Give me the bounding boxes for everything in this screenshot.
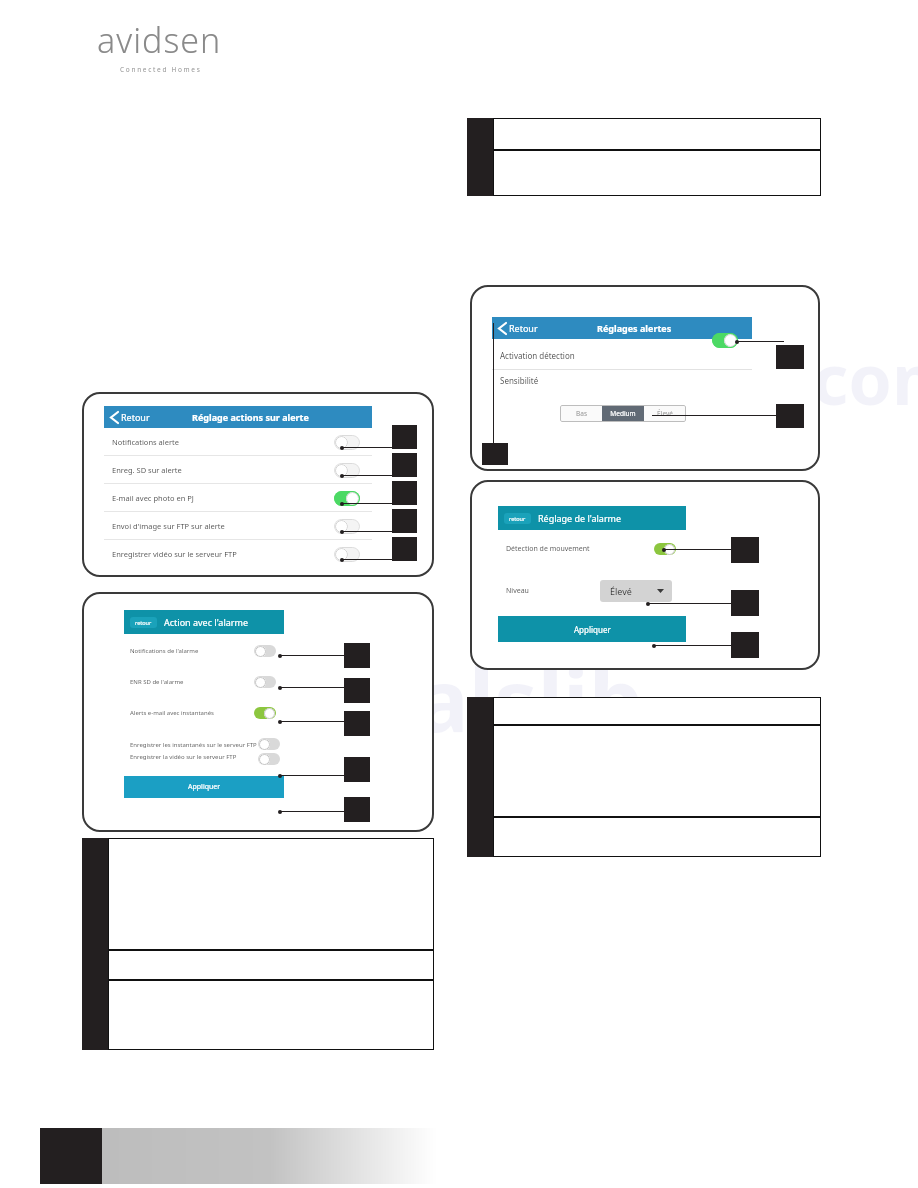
- staticText: Élevé: [610, 585, 632, 597]
- button[interactable]: Alerts e-mail avec instantanés: [124, 700, 284, 726]
- button[interactable]: Medium: [602, 405, 644, 422]
- button[interactable]: retour: [509, 515, 526, 522]
- button[interactable]: Enregistrer vidéo sur le serveur FTP: [104, 540, 372, 568]
- button[interactable]: Élevé: [600, 580, 672, 602]
- button[interactable]: [654, 543, 676, 555]
- staticText: Détection de mouvement: [506, 544, 590, 554]
- button[interactable]: E-mail avec photo en PJ: [104, 484, 372, 512]
- button[interactable]: [712, 333, 738, 348]
- staticText: Bas: [576, 409, 587, 418]
- button[interactable]: retour: [135, 619, 152, 626]
- button[interactable]: [334, 547, 360, 562]
- staticText: Appliquer: [574, 624, 611, 635]
- staticText: retour: [135, 619, 152, 626]
- button[interactable]: [254, 645, 276, 657]
- button[interactable]: Bas: [560, 405, 602, 422]
- staticText: manualslib: [170, 640, 644, 757]
- button[interactable]: Retour: [492, 317, 752, 339]
- staticText: Niveau: [506, 586, 529, 596]
- button[interactable]: Retour: [104, 406, 372, 428]
- button[interactable]: ENR SD de l'alarme: [124, 669, 284, 695]
- button[interactable]: Envoi d'image sur FTP sur alerte: [104, 512, 372, 540]
- button[interactable]: [258, 738, 280, 750]
- staticText: Medium: [610, 409, 636, 418]
- staticText: Notifications alerte: [112, 437, 179, 447]
- staticText: Activation détection: [500, 350, 575, 361]
- button[interactable]: [334, 435, 360, 450]
- staticText: Enregistrer les instantanés sur le serve…: [130, 741, 257, 749]
- staticText: Appliquer: [188, 782, 221, 792]
- staticText: E-mail avec photo en PJ: [112, 493, 194, 503]
- button[interactable]: Appliquer: [124, 776, 284, 798]
- button[interactable]: [334, 491, 360, 506]
- staticText: C o n n e c t e d H o m e s: [120, 65, 200, 74]
- staticText: Réglages alertes: [597, 322, 672, 334]
- staticText: Retour: [121, 411, 150, 423]
- staticText: ENR SD de l'alarme: [130, 678, 184, 686]
- staticText: Sensibilité: [500, 375, 539, 386]
- staticText: Notifications de l'alarme: [130, 647, 199, 655]
- staticText: Enreg. SD sur alerte: [112, 465, 182, 475]
- staticText: retour: [509, 515, 526, 522]
- staticText: archive . com: [500, 330, 918, 425]
- staticText: Réglage de l'alarme: [538, 512, 622, 524]
- button[interactable]: Enreg. SD sur alerte: [104, 456, 372, 484]
- button[interactable]: Notifications alerte: [104, 428, 372, 456]
- staticText: Enregistrer la vidéo sur le serveur FTP: [130, 753, 237, 761]
- button[interactable]: [258, 753, 280, 765]
- staticText: Alerts e-mail avec instantanés: [130, 709, 214, 717]
- staticText: Retour: [509, 322, 538, 334]
- button[interactable]: Appliquer: [498, 616, 686, 642]
- staticText: Envoi d'image sur FTP sur alerte: [112, 521, 225, 531]
- staticText: Action avec l'alarme: [164, 616, 248, 628]
- button[interactable]: [254, 676, 276, 688]
- staticText: Enregistrer vidéo sur le serveur FTP: [112, 549, 237, 559]
- button[interactable]: [334, 519, 360, 534]
- button[interactable]: Notifications de l'alarme: [124, 638, 284, 664]
- button[interactable]: Élevé: [644, 405, 686, 422]
- button[interactable]: [254, 707, 276, 719]
- button[interactable]: [334, 463, 360, 478]
- staticText: Élevé: [657, 409, 673, 418]
- staticText: Réglage actions sur alerte: [192, 411, 309, 423]
- staticText: avidsen: [97, 17, 222, 63]
